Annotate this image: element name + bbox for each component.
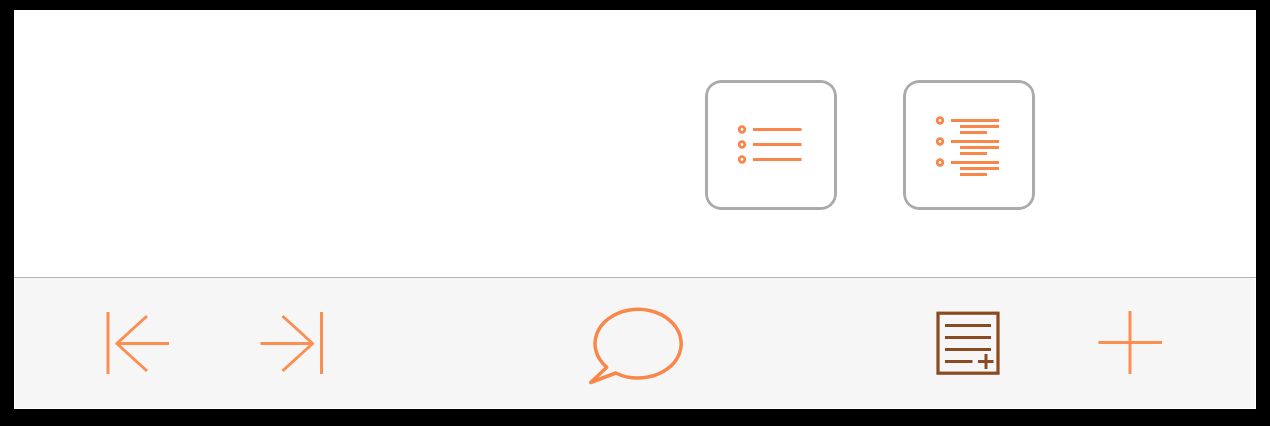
- button[interactable]: Last page: [236, 288, 346, 398]
- button[interactable]: First page: [83, 288, 193, 398]
- button[interactable]: [903, 80, 1035, 210]
- button[interactable]: [705, 80, 837, 210]
- button[interactable]: Add: [1075, 288, 1185, 398]
- button[interactable]: New document: [913, 288, 1023, 398]
- button[interactable]: Comments: [581, 288, 691, 398]
